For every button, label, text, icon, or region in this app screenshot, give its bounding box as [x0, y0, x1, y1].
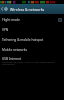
staticText: Tethering & mobile hotspot: [2, 38, 62, 42]
staticText: USB Internet: [2, 57, 22, 61]
button[interactable]: USB Internet: [0, 55, 64, 69]
button[interactable]: Flight mode: [0, 15, 64, 25]
button[interactable]: Navigate up: [0, 4, 9, 14]
staticText: Mobile networks: [2, 48, 62, 52]
staticText: Flight mode: [2, 18, 56, 22]
button[interactable]: Mobile networks: [0, 45, 64, 55]
staticText: Windows XP, Vista, Linux or Mac needs dr…: [2, 60, 62, 66]
button[interactable]: VPN: [0, 25, 64, 35]
staticText: Wireless & networks: [10, 7, 45, 12]
staticText: VPN: [2, 28, 62, 32]
button[interactable]: Tethering & mobile hotspot: [0, 35, 64, 45]
